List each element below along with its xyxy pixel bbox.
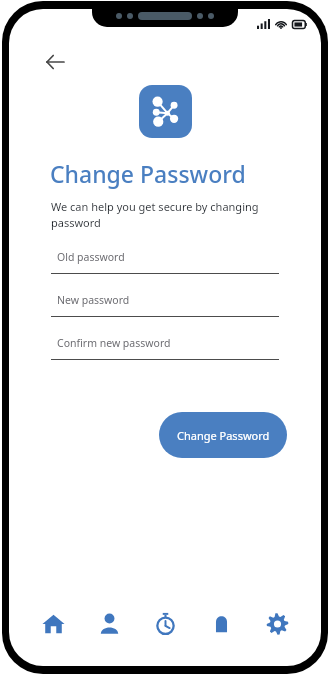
staticText: We can help you get secure by changing p… — [51, 199, 285, 230]
staticText: New password — [57, 293, 130, 307]
staticText: Old password — [57, 250, 125, 264]
button[interactable]: Old password — [51, 250, 279, 274]
button[interactable]: Home — [36, 606, 70, 640]
button[interactable]: Profile — [92, 606, 126, 640]
button[interactable]: Confirm new password — [51, 336, 279, 360]
button[interactable]: Timer — [148, 606, 182, 640]
button[interactable]: New password — [51, 293, 279, 317]
button[interactable]: Back — [38, 45, 72, 79]
button[interactable]: Change Password — [159, 412, 287, 458]
button[interactable]: Notifications — [204, 606, 238, 640]
staticText: Change Password — [50, 158, 246, 189]
button[interactable]: Settings — [260, 606, 294, 640]
staticText: Change Password — [177, 428, 270, 443]
staticText: Confirm new password — [57, 336, 171, 350]
